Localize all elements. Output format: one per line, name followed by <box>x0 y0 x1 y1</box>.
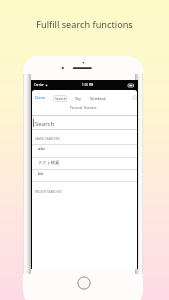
staticText: Personal <box>70 106 83 110</box>
button[interactable]: Personal <box>70 104 83 111</box>
staticText: テスト検索 <box>38 160 60 165</box>
staticText: Fulfill search functions <box>0 18 169 31</box>
button[interactable]: Search <box>53 95 67 102</box>
staticText: Business <box>84 106 97 110</box>
staticText: RECENT SEARCHES <box>35 190 62 194</box>
staticText: Carrier <box>34 83 44 87</box>
staticText: SAVED SEARCHES <box>35 137 60 141</box>
button[interactable]: Done <box>35 95 46 101</box>
staticText: Notebook <box>90 96 106 101</box>
staticText: abc <box>38 146 46 152</box>
staticText: Search <box>55 96 66 101</box>
button[interactable]: Tag <box>71 95 85 102</box>
button[interactable]: abc <box>32 143 137 155</box>
button[interactable]: Home <box>77 276 91 290</box>
button[interactable]: bb <box>32 168 137 180</box>
staticText: Search <box>35 119 55 127</box>
button[interactable]: Business <box>84 104 97 111</box>
button[interactable]: テスト検索 <box>32 156 137 168</box>
staticText: bb <box>38 171 44 177</box>
button[interactable]: Search <box>132 95 137 101</box>
staticText: Done <box>35 95 46 101</box>
staticText: Tag <box>75 96 81 101</box>
staticText: 1:16 PM <box>82 83 94 87</box>
button[interactable]: Notebook <box>88 95 108 102</box>
